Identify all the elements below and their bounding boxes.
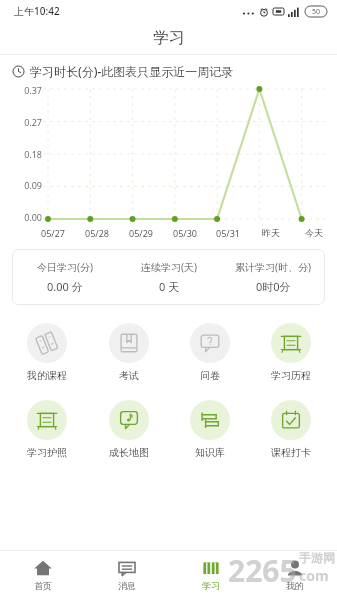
staticText: 0.37 <box>8 84 42 96</box>
staticText: 0.09 <box>8 179 42 191</box>
staticText: 05/28 <box>85 227 109 239</box>
staticText: 05/27 <box>41 227 65 239</box>
button[interactable]: 我的课程 <box>6 321 88 384</box>
staticText: 连续学习(天) <box>141 260 197 274</box>
staticText: 0.27 <box>8 116 42 128</box>
button[interactable]: 首页 <box>0 556 85 593</box>
staticText: 学习 <box>153 28 185 48</box>
staticText: 消息 <box>118 580 136 591</box>
staticText: 0.18 <box>8 148 42 160</box>
staticText: com <box>299 566 329 585</box>
staticText: 我的 <box>286 580 304 591</box>
staticText: 知识库 <box>195 446 225 459</box>
other: 考试 <box>109 323 149 363</box>
staticText: 50 <box>312 7 321 17</box>
other: 问卷 <box>190 323 230 363</box>
staticText: 问卷 <box>200 369 220 382</box>
staticText: 05/31 <box>216 227 240 239</box>
staticText: 成长地图 <box>109 446 149 459</box>
other: 知识库 <box>190 400 230 440</box>
staticText: 上午10:42 <box>14 4 60 18</box>
staticText: 累计学习(时、分) <box>235 260 311 274</box>
other: 学习历程 <box>271 323 311 363</box>
button[interactable]: 课程打卡 <box>250 398 331 461</box>
staticText: 05/29 <box>129 227 153 239</box>
button[interactable]: 问卷 <box>169 321 250 384</box>
button[interactable]: 学习护照 <box>6 398 88 461</box>
other: 课程打卡 <box>271 400 311 440</box>
button[interactable]: 考试 <box>88 321 169 384</box>
button[interactable]: 知识库 <box>169 398 250 461</box>
button[interactable]: 今日学习(分) <box>12 249 325 305</box>
staticText: 05/30 <box>173 227 197 239</box>
staticText: 今天 <box>305 227 323 238</box>
other: 学习护照 <box>27 400 67 440</box>
staticText: 课程打卡 <box>271 446 311 459</box>
staticText: 手游网 <box>299 550 335 565</box>
button[interactable]: 学习历程 <box>250 321 331 384</box>
staticText: 我的课程 <box>27 369 67 382</box>
button[interactable]: 成长地图 <box>88 398 169 461</box>
staticText: 0 天 <box>159 279 180 294</box>
button[interactable]: 消息 <box>85 556 169 593</box>
button[interactable]: 学习 <box>169 556 253 593</box>
staticText: 0.00 <box>8 211 42 223</box>
staticText: 学习时长(分)-此图表只显示近一周记录 <box>30 63 234 79</box>
staticText: 考试 <box>119 369 139 382</box>
other: 我的课程 <box>27 323 67 363</box>
staticText: 首页 <box>34 580 52 591</box>
other: 成长地图 <box>109 400 149 440</box>
staticText: 学习历程 <box>271 369 311 382</box>
staticText: 今日学习(分) <box>37 260 93 274</box>
staticText: 0时0分 <box>256 279 291 294</box>
button[interactable]: 我的 <box>253 556 337 593</box>
staticText: 学习护照 <box>27 446 67 459</box>
staticText: 昨天 <box>262 227 280 238</box>
staticText: 2265 <box>228 550 297 591</box>
staticText: 学习 <box>202 580 220 591</box>
staticText: 0.00 分 <box>47 279 83 294</box>
